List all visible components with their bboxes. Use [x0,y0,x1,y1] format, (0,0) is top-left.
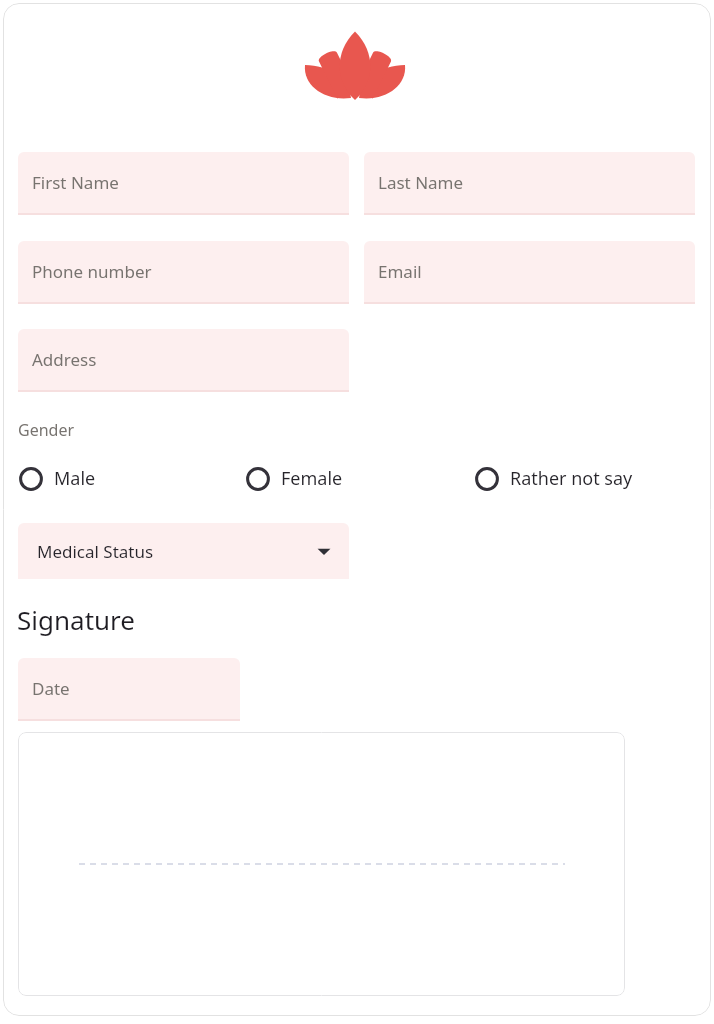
button[interactable]: Male [17,464,98,493]
button[interactable]: Rather not say [473,464,635,493]
staticText: Phone number [32,260,152,283]
button[interactable]: Last Name [364,152,695,215]
staticText: Medical Status [37,540,154,563]
staticText: Date [32,677,70,700]
staticText: Male [54,466,96,491]
staticText: Gender [18,419,75,441]
staticText: Email [378,260,422,283]
button[interactable]: Address [18,329,349,392]
staticText: Rather not say [510,466,633,491]
button[interactable]: Female [244,464,345,493]
button[interactable]: Date [18,658,240,721]
button[interactable]: Email [364,241,695,304]
button[interactable]: Signature drawing area [18,732,625,996]
button[interactable]: Phone number [18,241,349,304]
staticText: Address [32,348,97,371]
staticText: Signature [17,602,135,637]
button[interactable]: Medical Status [18,523,349,579]
staticText: First Name [32,171,119,194]
staticText: Last Name [378,171,464,194]
staticText: Female [281,466,343,491]
button[interactable]: First Name [18,152,349,215]
